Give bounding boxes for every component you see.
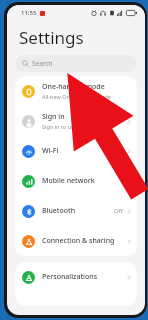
staticText: Wi-Fi <box>42 146 59 156</box>
staticText: Sign in to use services. <box>42 123 101 130</box>
staticText: Mobile network <box>42 176 95 186</box>
staticText: Personalizations <box>42 272 98 282</box>
staticText: 11:55 <box>21 9 37 17</box>
button[interactable]: Connection & sharing <box>15 226 137 256</box>
staticText: Bluetooth <box>42 206 76 216</box>
button[interactable]: Bluetooth <box>15 196 137 226</box>
staticText: Settings <box>19 26 84 49</box>
staticText: All-new One-handed mode <box>42 93 111 100</box>
button[interactable]: Mobile network <box>15 166 137 196</box>
staticText: Sign in <box>42 112 65 122</box>
staticText: Connection & sharing <box>42 236 115 246</box>
staticText: Search <box>32 59 53 68</box>
button[interactable]: Search <box>15 55 137 72</box>
button[interactable]: Sign in <box>15 106 137 136</box>
button[interactable]: Wi-Fi <box>15 136 137 166</box>
staticText: Off <box>114 207 123 215</box>
staticText: One-handed mode <box>42 82 105 92</box>
button[interactable]: One-handed mode <box>15 76 137 106</box>
button[interactable]: Personalizations <box>15 262 137 292</box>
